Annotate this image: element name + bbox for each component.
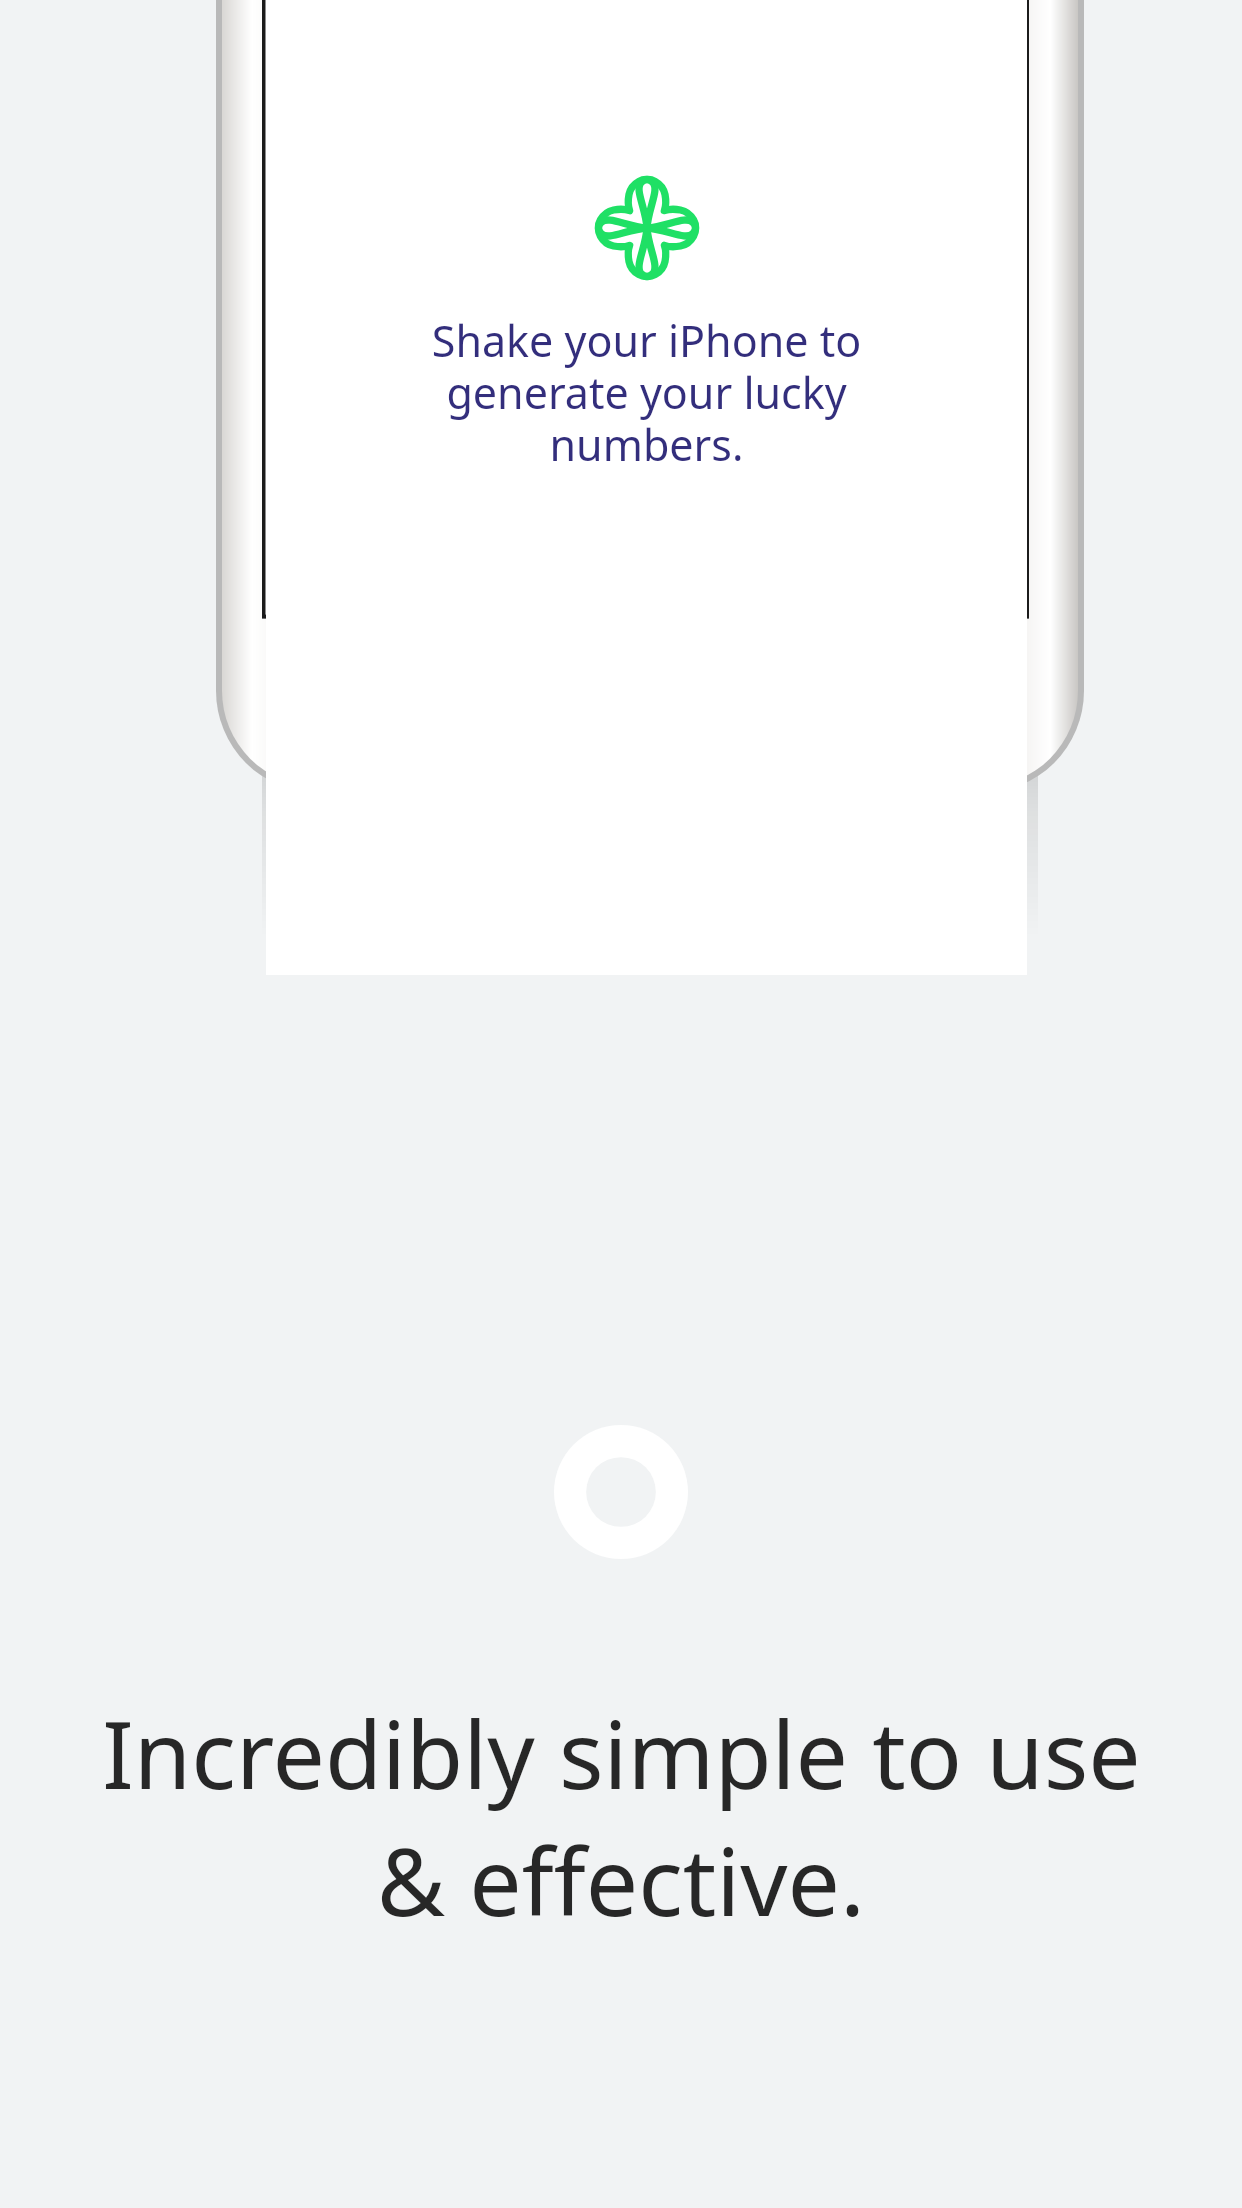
- staticText: & effective.: [377, 1817, 865, 1944]
- button[interactable]: Page indicator: [554, 1425, 688, 1559]
- staticText: Incredibly simple to use: [102, 1690, 1141, 1817]
- staticText: Shake your iPhone to generate your lucky…: [378, 311, 915, 473]
- button[interactable]: Lucky clover: [604, 185, 690, 271]
